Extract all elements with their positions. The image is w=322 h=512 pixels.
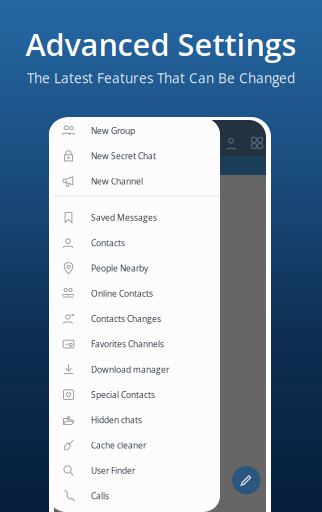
button[interactable]: New Secret Chat [49,143,220,169]
staticText: Hidden chats [91,414,142,426]
button[interactable]: Contacts [49,230,220,255]
staticText: Download manager [91,363,169,375]
button[interactable]: New Group [49,118,220,143]
staticText: Favorites Channels [91,338,164,350]
button[interactable]: Download manager [49,357,220,382]
button[interactable]: Cache cleaner [49,433,220,458]
staticText: New Channel [91,175,143,187]
staticText: Calls [91,490,109,502]
staticText: Cache cleaner [91,439,146,451]
button[interactable]: Calls [49,483,220,508]
button[interactable]: New Channel [49,169,220,194]
button[interactable]: Saved Messages [49,205,220,230]
button[interactable]: Hidden chats [49,407,220,433]
staticText: Saved Messages [91,212,157,223]
button[interactable]: User Finder [49,458,220,483]
staticText: New Group [91,125,135,136]
staticText: New Secret Chat [91,150,156,162]
staticText: Online Contacts [91,288,153,299]
staticText: Contacts [91,237,125,249]
button[interactable]: Profile [219,131,243,155]
staticText: User Finder [91,465,135,476]
staticText: People Nearby [91,262,148,274]
button[interactable]: People Nearby [49,255,220,281]
button[interactable]: Apps [245,131,269,155]
staticText: Special Contacts [91,389,155,400]
staticText: The Latest Features That Can Be Changed [27,69,295,87]
staticText: Contacts Changes [91,313,161,324]
button[interactable]: Special Contacts [49,382,220,407]
button[interactable]: Favorites Channels [49,331,220,357]
button[interactable]: Contacts Changes [49,306,220,331]
button[interactable]: Compose [232,466,260,494]
button[interactable]: Online Contacts [49,281,220,306]
staticText: Advanced Settings [25,23,296,65]
